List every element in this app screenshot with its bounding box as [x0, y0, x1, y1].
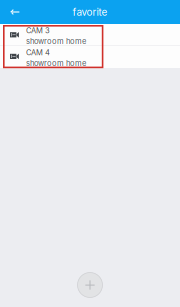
button[interactable]: CAM 3 — [0, 24, 180, 45]
staticText: favorite — [72, 6, 107, 18]
staticText: CAM 4 — [26, 48, 50, 57]
staticText: CAM 3 — [26, 26, 50, 35]
staticText: showroom home — [26, 37, 86, 46]
button[interactable]: Back — [0, 0, 28, 24]
button[interactable]: CAM 4 — [0, 46, 180, 68]
staticText: showroom home — [26, 59, 86, 68]
button[interactable]: Add camera — [73, 268, 107, 302]
